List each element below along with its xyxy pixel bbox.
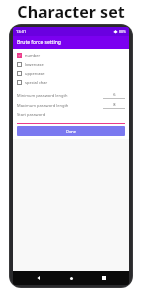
staticText: Brute force setting (17, 39, 61, 46)
button[interactable]: Home (64, 271, 78, 285)
staticText: special char (25, 80, 48, 85)
staticText: 13:01 (16, 29, 27, 34)
staticText: Minimum password length (17, 93, 68, 98)
button[interactable]: lowercase (17, 60, 125, 69)
button[interactable]: Back (32, 271, 46, 285)
button[interactable]: number (17, 51, 125, 60)
staticText: Character set (17, 1, 125, 23)
staticText: Done (66, 129, 77, 134)
button[interactable]: Recent apps (97, 271, 111, 285)
button[interactable]: special char (17, 78, 125, 87)
staticText: 88% (119, 29, 126, 34)
staticText: Maximum password length (17, 103, 69, 108)
staticText: 8 (113, 102, 116, 107)
staticText: uppercase (25, 71, 45, 76)
button[interactable]: Maximum password length (17, 100, 125, 110)
button[interactable]: uppercase (17, 69, 125, 78)
button[interactable]: Done (17, 126, 125, 136)
staticText: 6 (113, 92, 116, 97)
staticText: number (25, 53, 41, 58)
button[interactable]: Minimum password length (17, 90, 125, 100)
staticText: Start password (17, 112, 46, 117)
button[interactable]: Start password (17, 110, 125, 119)
staticText: lowercase (25, 62, 44, 67)
